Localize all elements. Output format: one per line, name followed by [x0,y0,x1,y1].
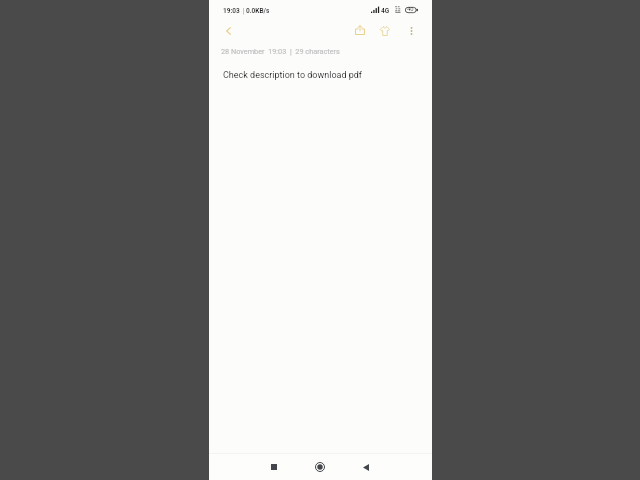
button[interactable]: Share [348,18,372,42]
button[interactable]: Recent apps [262,455,286,479]
staticText: 19:03 [223,7,240,15]
button[interactable]: Back [354,455,378,479]
staticText: 40 [407,6,414,13]
staticText: Check description to download pdf [223,70,363,81]
button[interactable]: Home [308,455,332,479]
staticText: 28 November 19:03 | 29 characters [221,47,340,56]
staticText: | [243,7,245,15]
staticText: 4G [381,7,390,15]
staticText: 0.0KB/s [246,7,270,15]
button[interactable]: Change skin [373,19,397,43]
button[interactable]: Back [216,19,240,43]
button[interactable]: More options [399,19,423,43]
